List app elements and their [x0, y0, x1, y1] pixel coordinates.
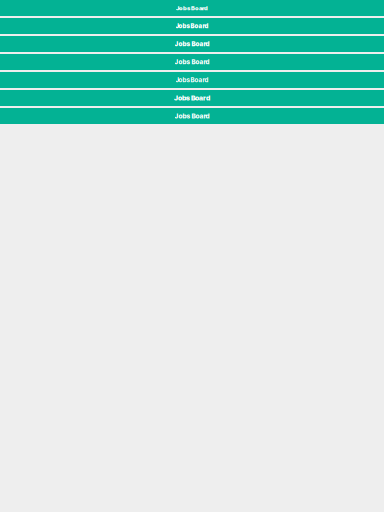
staticText: Jobs Board	[174, 40, 209, 48]
staticText: Jobs Board	[175, 76, 208, 84]
staticText: Jobs Board	[174, 94, 210, 102]
staticText: Jobs Board	[174, 58, 209, 66]
staticText: Jobs Board	[176, 4, 208, 12]
staticText: Jobs Board	[174, 112, 209, 120]
staticText: Jobs Board	[175, 22, 208, 30]
